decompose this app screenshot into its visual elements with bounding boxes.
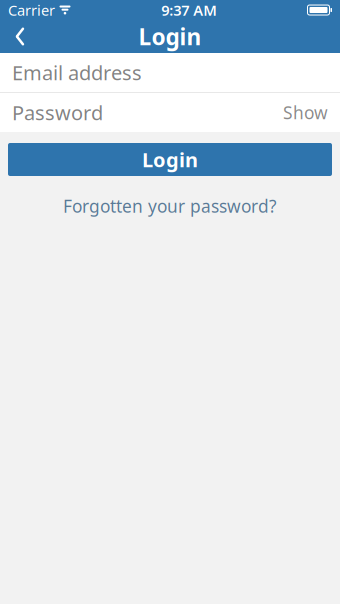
button[interactable]: Forgotten your password?: [8, 191, 332, 221]
button[interactable]: Password: [0, 93, 340, 132]
button[interactable]: Email address: [0, 53, 340, 92]
staticText: Login: [138, 21, 201, 51]
staticText: Login: [142, 146, 198, 173]
staticText: Show: [283, 101, 328, 124]
staticText: 9:37 AM: [161, 0, 217, 20]
button[interactable]: Back: [0, 20, 40, 53]
staticText: Carrier: [8, 0, 55, 20]
button[interactable]: Login: [8, 143, 332, 176]
staticText: Password: [12, 99, 103, 126]
staticText: Forgotten your password?: [63, 194, 277, 217]
staticText: Email address: [12, 59, 142, 86]
